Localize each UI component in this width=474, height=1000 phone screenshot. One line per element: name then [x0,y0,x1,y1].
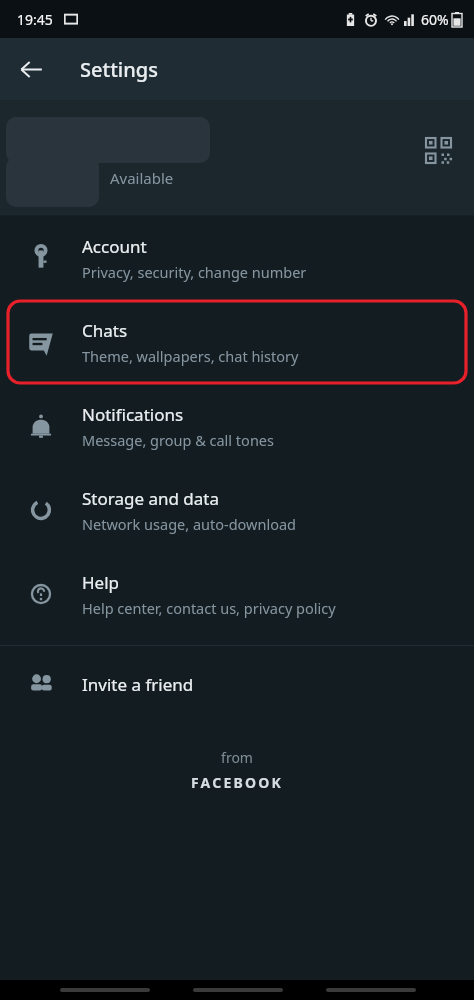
staticText: 60% [421,10,449,29]
button[interactable]: Chats [0,300,474,384]
staticText: FACEBOOK [191,773,283,792]
button[interactable]: Recents [60,988,150,992]
button[interactable]: Home [193,988,283,992]
button[interactable]: Back [326,988,416,992]
staticText: Network usage, auto-download [82,514,296,534]
button[interactable]: QR code [416,128,460,172]
staticText: Account [82,235,147,258]
staticText: Settings [80,56,158,83]
staticText: Message, group & call tones [82,430,274,450]
staticText: Notifications [82,403,184,426]
button[interactable]: Back [8,46,54,92]
button[interactable]: Invite a friend [0,654,474,714]
button[interactable]: Notifications [0,384,474,468]
staticText: Invite a friend [82,673,194,696]
staticText: Help center, contact us, privacy policy [82,598,336,618]
button[interactable]: Storage and data [0,468,474,552]
staticText: Help [82,571,120,594]
staticText: from [221,748,253,767]
button[interactable]: Help [0,552,474,636]
button[interactable]: Available [0,100,474,215]
staticText: Chats [82,319,128,342]
staticText: Theme, wallpapers, chat history [82,346,299,366]
staticText: Storage and data [82,487,220,510]
staticText: 19:45 [17,10,53,29]
staticText: Available [110,168,174,188]
button[interactable]: Account [0,216,474,300]
staticText: Privacy, security, change number [82,262,307,282]
